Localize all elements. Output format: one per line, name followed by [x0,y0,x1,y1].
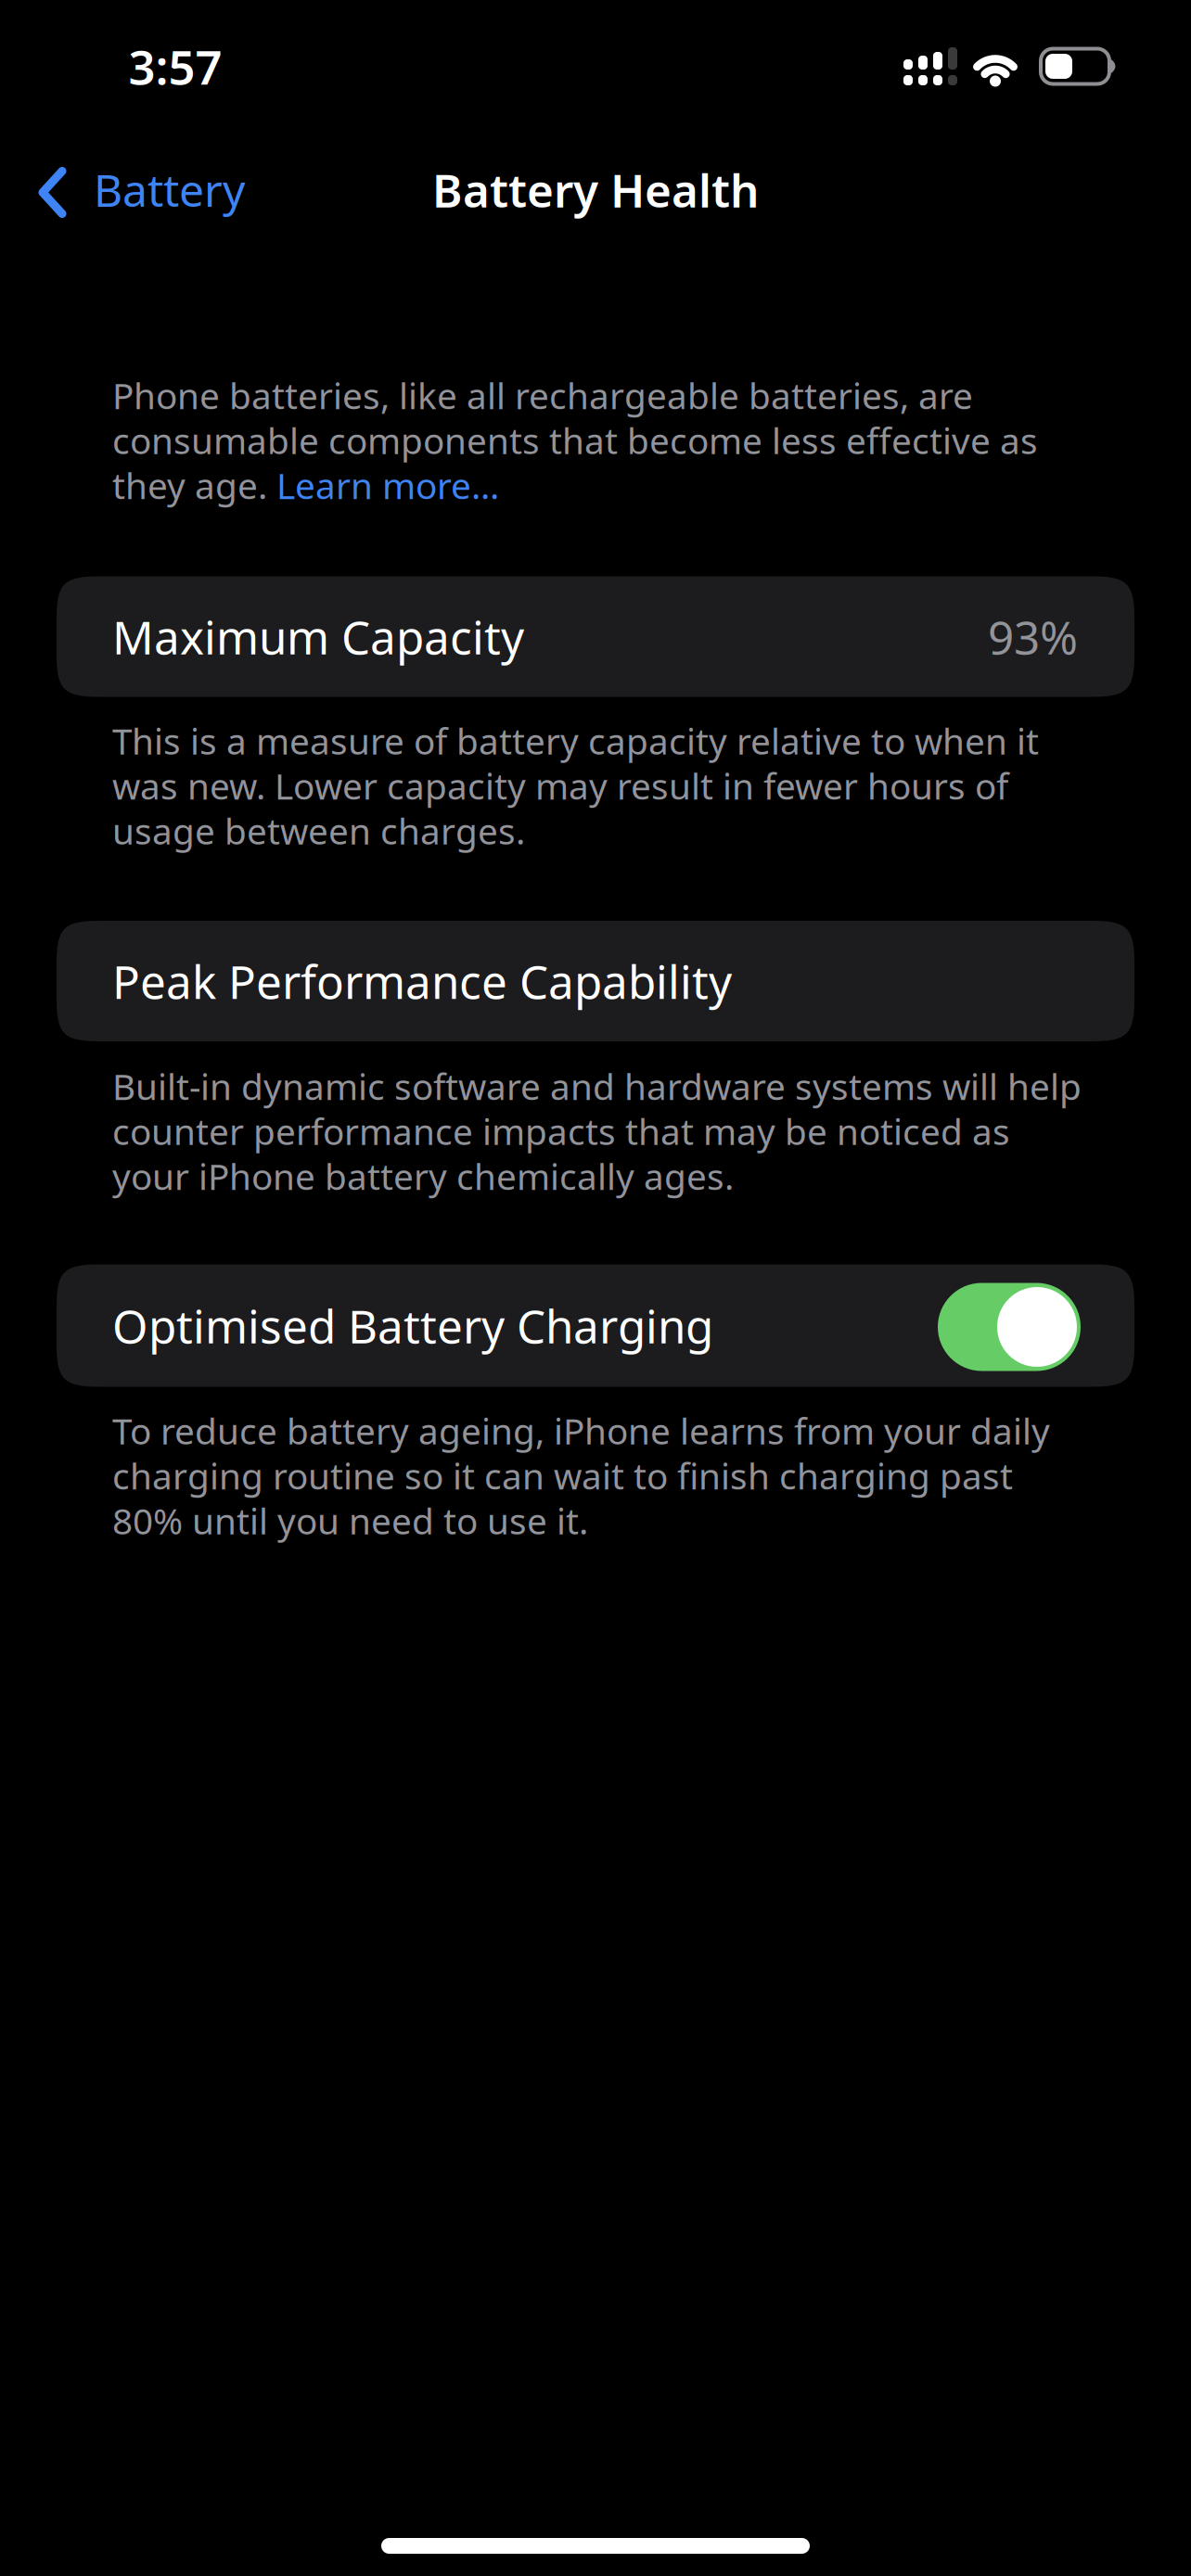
staticText: charging routine so it can wait to finis… [112,1452,1013,1499]
staticText: 80% until you need to use it. [112,1497,588,1544]
staticText: 3:57 [128,35,222,98]
button[interactable]: Battery [0,162,269,217]
staticText: Built-in dynamic software and hardware s… [112,1062,1082,1110]
staticText: Peak Performance Capability [112,951,732,1011]
button[interactable]: Peak Performance Capability [57,921,1134,1041]
button[interactable]: Learn more... [276,461,499,509]
button[interactable]: Optimised Battery Charging [938,1280,1078,1371]
staticText: 93% [988,606,1078,667]
staticText: consumable components that become less e… [112,416,1038,464]
button[interactable]: Optimised Battery Charging [57,1264,1134,1387]
staticText: counter performance impacts that may be … [112,1107,1010,1155]
staticText: was new. Lower capacity may result in fe… [112,762,1008,809]
staticText: Maximum Capacity [112,606,524,667]
staticText: This is a measure of battery capacity re… [112,717,1039,764]
staticText: Learn more... [276,461,499,509]
staticText: Battery [94,160,245,219]
staticText: Battery Health [432,159,759,220]
staticText: they age. [112,461,276,509]
staticText: To reduce battery ageing, iPhone learns … [112,1407,1050,1454]
staticText: Phone batteries, like all rechargeable b… [112,371,973,419]
button[interactable]: Maximum Capacity [57,576,1134,697]
staticText: usage between charges. [112,807,525,854]
staticText: Optimised Battery Charging [112,1295,713,1356]
staticText: your iPhone battery chemically ages. [112,1152,734,1200]
